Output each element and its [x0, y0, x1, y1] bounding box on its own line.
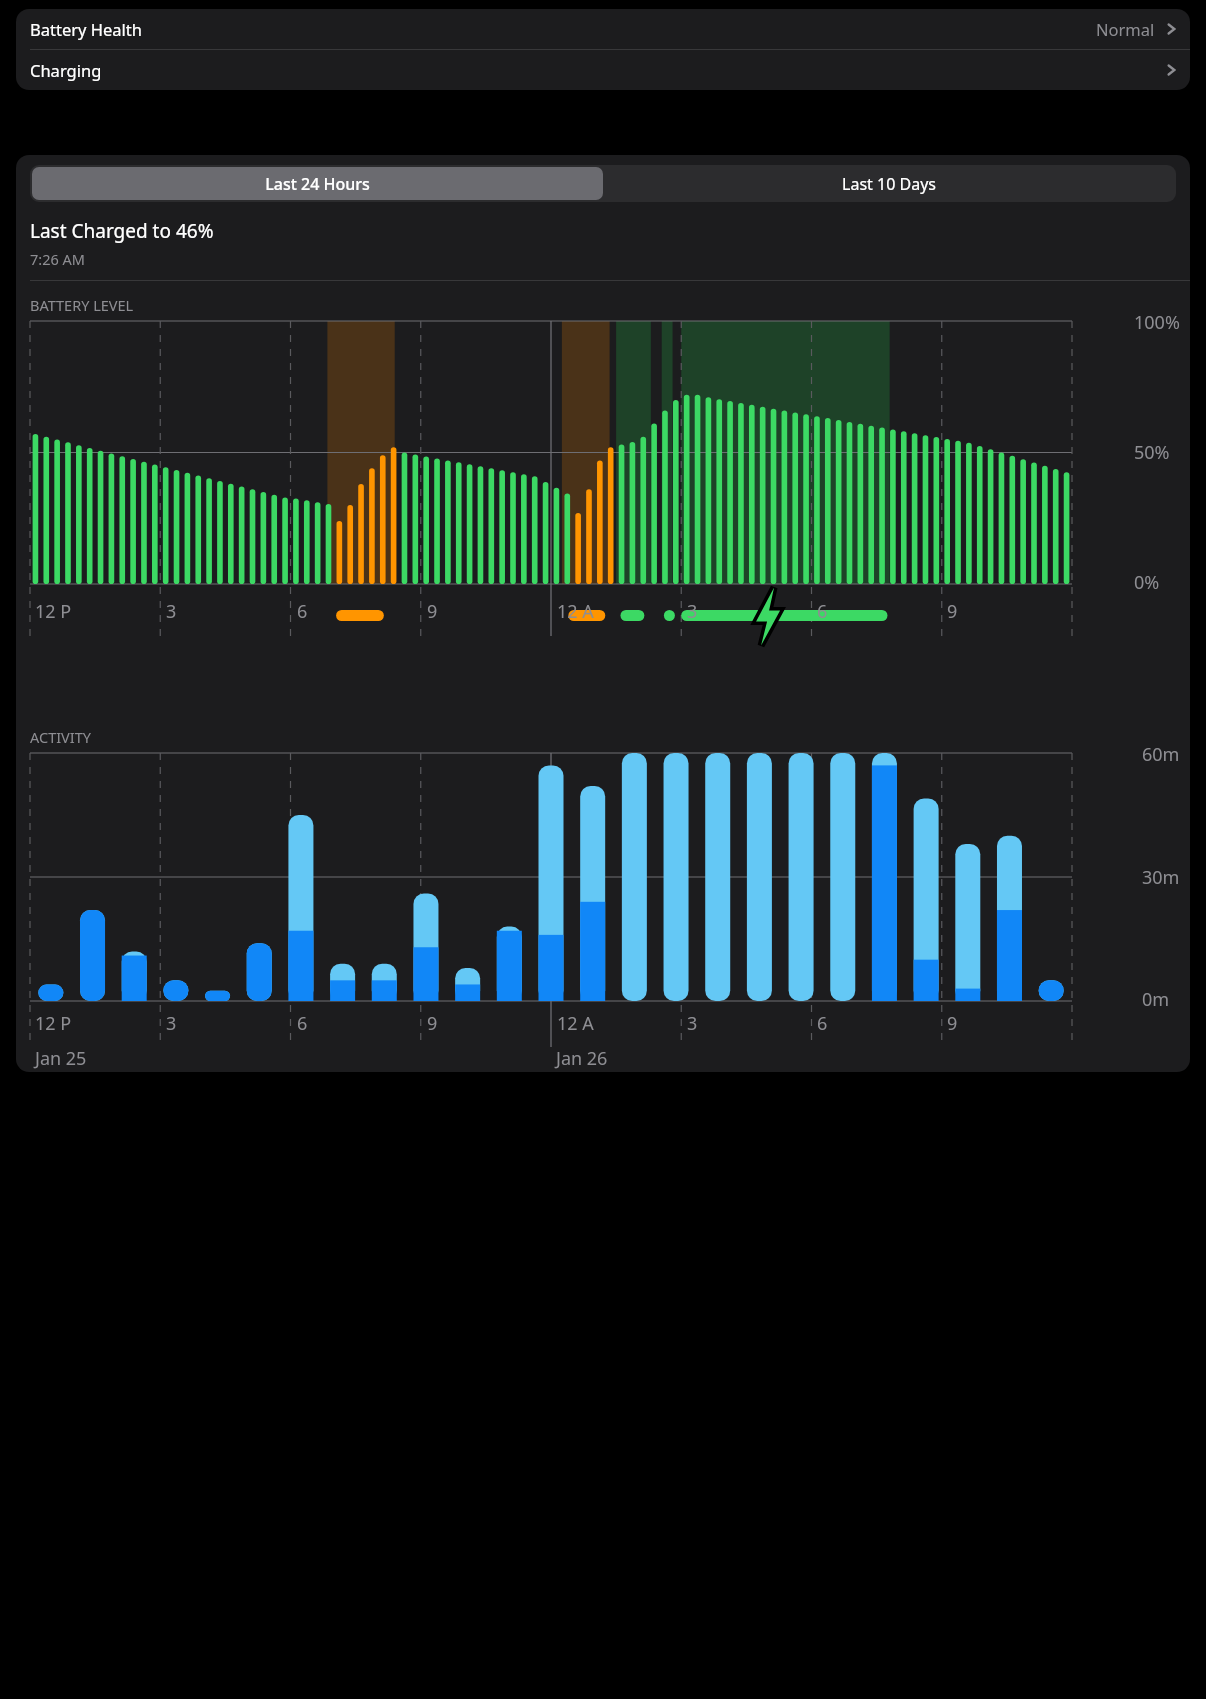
- staticText: BATTERY LEVEL: [30, 295, 134, 315]
- staticText: Jan 25: [35, 1046, 87, 1071]
- staticText: Jan 26: [556, 1046, 608, 1071]
- staticText: 9: [947, 599, 958, 624]
- staticText: Last 10 Days: [842, 173, 936, 195]
- staticText: 3: [166, 599, 177, 624]
- staticText: 12 A: [557, 599, 594, 624]
- staticText: 3: [166, 1011, 177, 1036]
- staticText: 3: [687, 599, 698, 624]
- staticText: 100%: [1134, 310, 1180, 335]
- staticText: 60m: [1142, 742, 1180, 767]
- staticText: 9: [427, 599, 438, 624]
- staticText: 6: [297, 1011, 308, 1036]
- staticText: 0%: [1134, 570, 1160, 595]
- staticText: 50%: [1134, 440, 1170, 465]
- staticText: Last 24 Hours: [265, 173, 370, 195]
- button[interactable]: Last 24 Hours: [32, 167, 603, 200]
- staticText: 12 P: [35, 599, 72, 624]
- button[interactable]: Charging: [16, 50, 1190, 90]
- staticText: 6: [817, 599, 828, 624]
- staticText: Charging: [30, 59, 102, 81]
- staticText: 3: [687, 1011, 698, 1036]
- staticText: 30m: [1142, 865, 1180, 890]
- staticText: Battery Health: [30, 18, 142, 40]
- button[interactable]: Battery Health: [16, 9, 1190, 49]
- staticText: Normal: [1096, 18, 1155, 40]
- staticText: 12 A: [557, 1011, 594, 1036]
- staticText: 0m: [1142, 987, 1170, 1012]
- staticText: Last Charged to 46%: [30, 218, 214, 244]
- staticText: 6: [297, 599, 308, 624]
- staticText: 12 P: [35, 1011, 72, 1036]
- staticText: 9: [427, 1011, 438, 1036]
- staticText: 6: [817, 1011, 828, 1036]
- button[interactable]: Last 10 Days: [603, 167, 1174, 200]
- staticText: ACTIVITY: [30, 727, 92, 747]
- staticText: 7:26 AM: [30, 249, 85, 269]
- staticText: 9: [947, 1011, 958, 1036]
